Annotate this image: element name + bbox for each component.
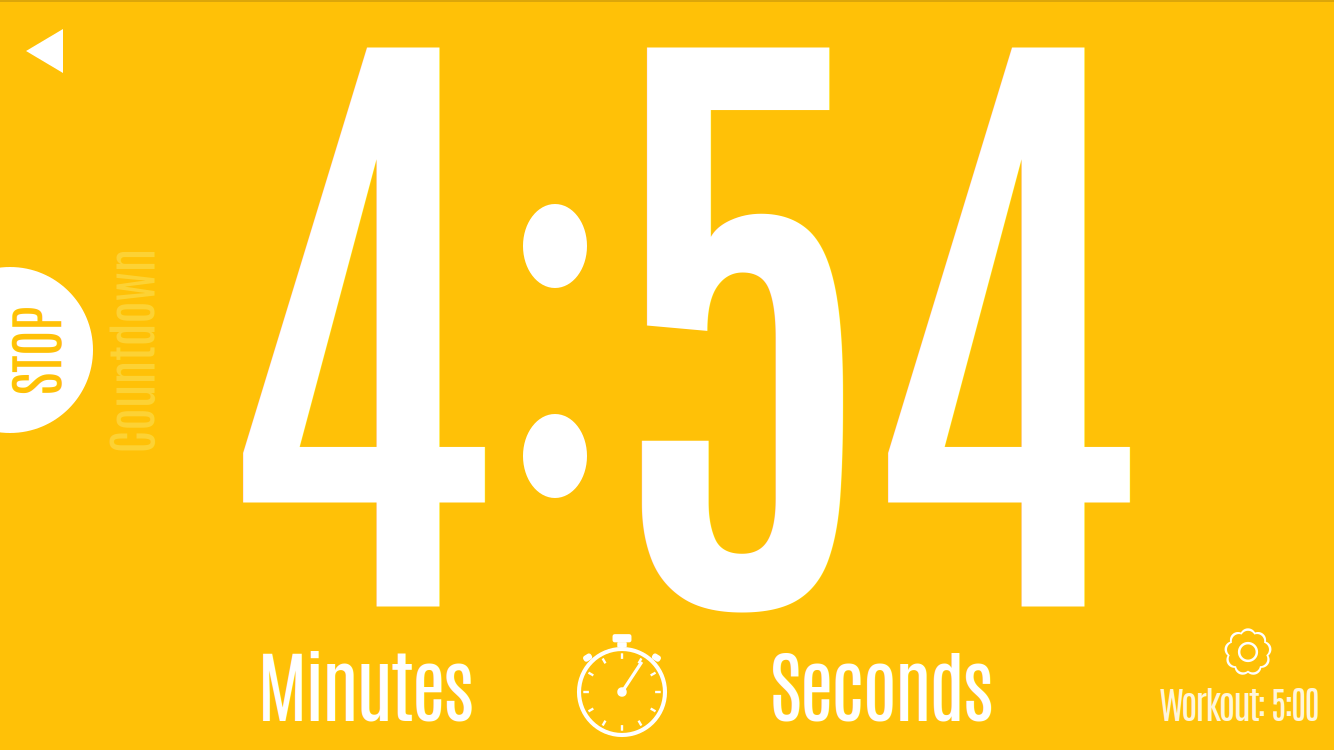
staticText: Workout: 5:00 [1159, 678, 1321, 726]
staticText: 4 [217, 0, 495, 697]
button[interactable]: Workout: 5:00 [1159, 678, 1321, 726]
staticText: Countdown [27, 318, 231, 384]
staticText: Seconds [770, 630, 994, 732]
button[interactable]: Stopwatch [0, 0, 1334, 750]
staticText: 54 [598, 0, 1140, 697]
button[interactable]: Settings [0, 0, 1334, 750]
staticText: STOP [0, 315, 77, 387]
button[interactable]: STOP [0, 266, 94, 434]
button[interactable]: Back [0, 0, 1334, 750]
staticText: Minutes [258, 630, 474, 732]
